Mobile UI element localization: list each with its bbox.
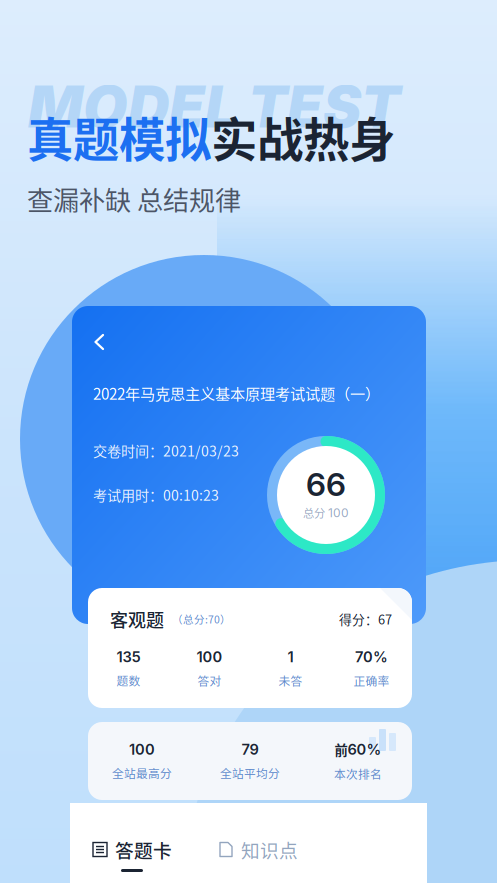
staticText: 答对 (197, 672, 221, 689)
staticText: 真题模拟 (27, 103, 211, 170)
staticText: 100 (129, 741, 155, 758)
staticText: （总分:70） (172, 611, 231, 627)
staticText: 100 (328, 506, 349, 520)
staticText: 66 (306, 465, 346, 504)
staticText: 查漏补缺 总结规律 (27, 180, 241, 218)
button[interactable]: 答题卡 (90, 836, 174, 872)
staticText: 总分 (303, 505, 325, 521)
staticText: 1 (287, 648, 293, 666)
staticText: 2022年马克思主义基本原理考试试题（一） (93, 382, 380, 404)
staticText: 客观题 (110, 606, 164, 632)
staticText: MODEL TEST (28, 72, 400, 141)
staticText: 135 (116, 648, 140, 666)
staticText: 70% (355, 648, 388, 666)
staticText: 未答 (278, 672, 302, 689)
staticText: 知识点 (241, 836, 298, 863)
staticText: 本次排名 (334, 765, 382, 782)
staticText: 79 (241, 741, 258, 758)
staticText: 得分：67 (339, 610, 392, 628)
staticText: 100 (196, 648, 222, 666)
button[interactable]: 知识点 (216, 836, 300, 872)
staticText: 全站平均分 (220, 764, 280, 781)
staticText: 正确率 (353, 672, 389, 689)
staticText: 实战热身 (211, 103, 395, 170)
button[interactable]: Back (93, 330, 119, 354)
staticText: 前 (334, 740, 347, 759)
staticText: 答题卡 (115, 836, 172, 863)
staticText: 全站最高分 (112, 764, 172, 781)
staticText: 题数 (116, 672, 140, 689)
staticText: 60% (347, 741, 381, 758)
staticText: 交卷时间：2021/03/23 (93, 440, 239, 460)
staticText: 考试用时：00:10:23 (93, 484, 219, 505)
